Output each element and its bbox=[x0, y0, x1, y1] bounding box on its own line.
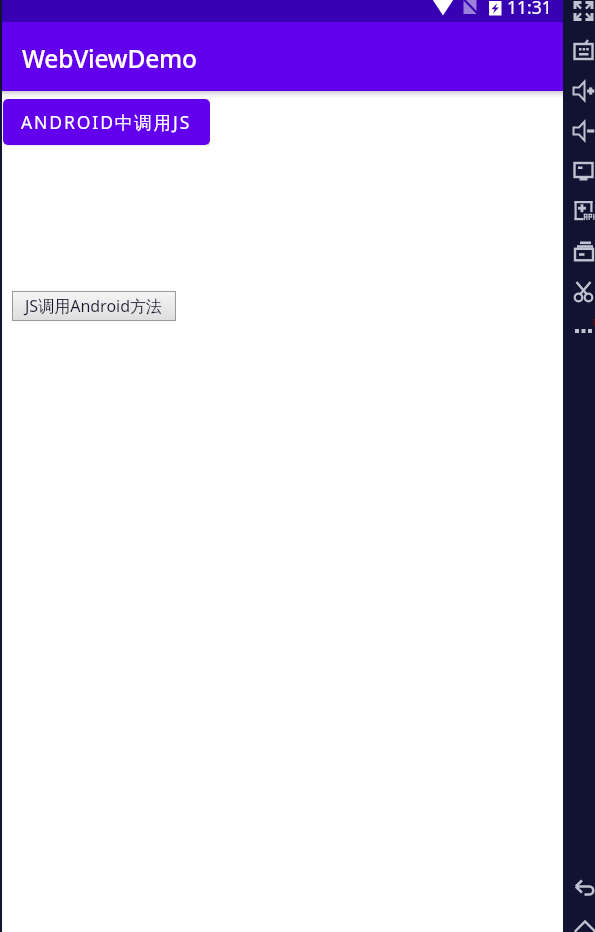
staticText: WebViewDemo bbox=[22, 42, 197, 75]
button[interactable]: ANDROID中调用JS bbox=[3, 99, 210, 145]
staticText: 11:31 bbox=[507, 0, 552, 17]
other: Emulator controls bbox=[563, 0, 595, 932]
staticText: ANDROID中调用JS bbox=[21, 110, 192, 134]
button[interactable]: JS调用Android方法 bbox=[13, 292, 175, 320]
staticText: JS调用Android方法 bbox=[25, 295, 163, 317]
